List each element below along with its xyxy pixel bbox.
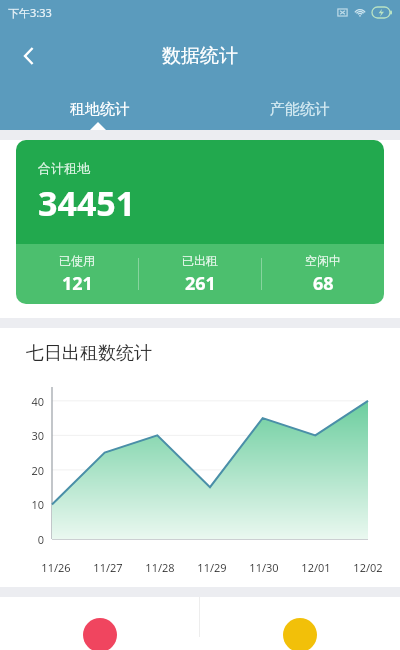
staticText: 下午3:33 — [8, 5, 52, 20]
staticText: 40 — [0, 394, 44, 409]
button[interactable]: 租地统计 — [0, 88, 200, 130]
button[interactable]: 合计租地 — [16, 140, 384, 304]
staticText: 11/27 — [82, 560, 134, 575]
staticText: 11/29 — [186, 560, 238, 575]
button[interactable]: 产能统计 — [200, 88, 400, 130]
staticText: 产能统计 — [270, 100, 330, 119]
staticText: 20 — [0, 463, 44, 478]
button[interactable]: 已出租 — [139, 253, 261, 296]
staticText: 已使用 — [59, 253, 95, 268]
staticText: 68 — [313, 271, 334, 296]
button[interactable] — [200, 597, 400, 637]
staticText: 34451 — [38, 180, 136, 226]
staticText: 七日出租数统计 — [26, 342, 152, 365]
staticText: 0 — [0, 532, 44, 547]
staticText: 261 — [185, 271, 216, 296]
staticText: 11/30 — [238, 560, 290, 575]
staticText: 租地统计 — [70, 100, 130, 119]
staticText: 空闲中 — [305, 253, 341, 268]
staticText: 30 — [0, 428, 44, 443]
staticText: 12/01 — [290, 560, 342, 575]
staticText: 已出租 — [182, 253, 218, 268]
button[interactable]: Back — [6, 33, 52, 79]
button[interactable]: 空闲中 — [262, 253, 384, 296]
staticText: 11/26 — [30, 560, 82, 575]
button[interactable]: 已使用 — [16, 253, 138, 296]
staticText: 11/28 — [134, 560, 186, 575]
button[interactable] — [0, 597, 199, 637]
staticText: 10 — [0, 497, 44, 512]
staticText: 121 — [62, 271, 93, 296]
staticText: 合计租地 — [38, 160, 90, 176]
staticText: 12/02 — [342, 560, 394, 575]
staticText: 数据统计 — [162, 44, 238, 68]
